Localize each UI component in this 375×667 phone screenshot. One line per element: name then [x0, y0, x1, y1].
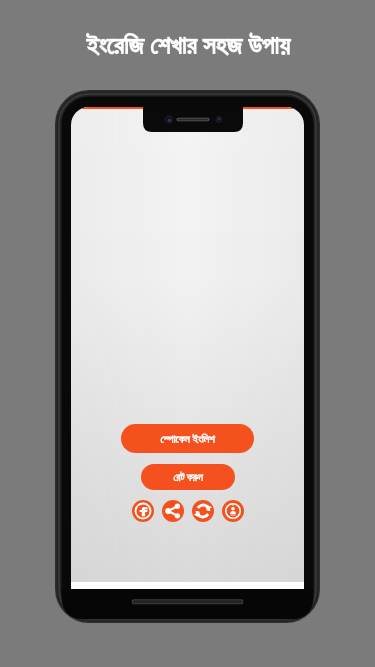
button[interactable]: Share: [162, 500, 184, 522]
staticText: ইংরেজি শেখার সহজ উপায়: [86, 27, 290, 61]
button[interactable]: Privacy policy: [222, 500, 244, 522]
staticText: রেট করুন: [173, 470, 203, 484]
button[interactable]: স্পোকেন ইংলিশ: [121, 424, 254, 453]
staticText: স্পোকেন ইংলিশ: [160, 431, 215, 446]
button[interactable]: Facebook: [132, 500, 154, 522]
button[interactable]: রেট করুন: [141, 464, 235, 490]
button[interactable]: Update: [192, 500, 214, 522]
